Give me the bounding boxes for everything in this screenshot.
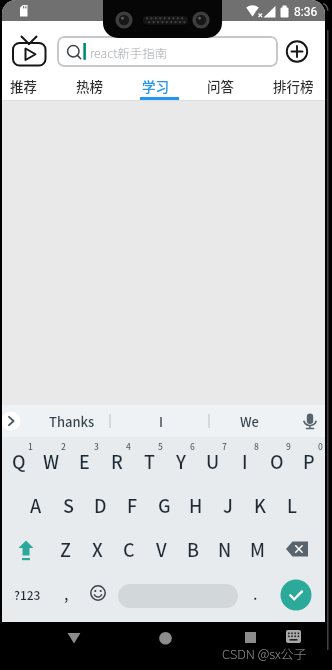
staticText: F — [127, 492, 138, 518]
button[interactable]: G — [148, 483, 180, 527]
staticText: 热榜 — [76, 76, 103, 96]
button[interactable]: 问答 — [207, 76, 234, 96]
button[interactable]: N — [209, 527, 241, 571]
staticText: J — [223, 492, 233, 518]
button[interactable]: S — [52, 483, 84, 527]
button[interactable]: , — [52, 571, 80, 617]
staticText: V — [156, 536, 167, 562]
button[interactable]: ?123 — [2, 571, 52, 617]
staticText: D — [94, 492, 107, 518]
button[interactable]: X — [81, 527, 113, 571]
staticText: CSDN @sx公子 — [222, 644, 307, 663]
button[interactable]: T — [133, 439, 165, 483]
staticText: M — [250, 536, 265, 562]
staticText: 4 — [126, 440, 131, 452]
staticText: H — [189, 492, 203, 518]
staticText: W — [43, 448, 60, 474]
staticText: , — [64, 583, 69, 605]
button[interactable]: V — [145, 527, 177, 571]
staticText: 学习 — [142, 76, 169, 96]
staticText: N — [218, 536, 232, 562]
staticText: Y — [176, 448, 186, 474]
staticText: . — [253, 583, 258, 605]
staticText: 8:36 — [294, 5, 318, 19]
staticText: ?123 — [14, 586, 41, 603]
button[interactable]: K — [244, 483, 276, 527]
button[interactable]: J — [212, 483, 244, 527]
staticText: 1 — [28, 440, 33, 452]
button[interactable] — [10, 33, 52, 69]
button[interactable]: 学习 — [142, 76, 169, 96]
staticText: react新手指南 — [90, 43, 168, 61]
button[interactable]: 推荐 — [10, 76, 37, 96]
button[interactable]: We — [210, 405, 288, 437]
staticText: 排行榜 — [273, 76, 314, 96]
button[interactable]: P — [293, 439, 325, 483]
staticText: I — [159, 412, 164, 431]
staticText: I — [242, 448, 248, 474]
staticText: O — [270, 448, 284, 474]
staticText: X — [92, 536, 103, 562]
staticText: 6 — [190, 440, 195, 452]
staticText: We — [240, 412, 259, 431]
staticText: 8 — [254, 440, 259, 452]
button[interactable]: W — [35, 439, 68, 483]
staticText: K — [254, 492, 266, 518]
staticText: 9 — [286, 440, 291, 452]
button[interactable] — [150, 622, 182, 654]
staticText: 问答 — [207, 76, 234, 96]
button[interactable]: C — [113, 527, 145, 571]
button[interactable]: F — [116, 483, 148, 527]
button[interactable]: 热榜 — [76, 76, 103, 96]
button[interactable] — [283, 39, 311, 67]
button[interactable]: R — [101, 439, 133, 483]
staticText: L — [287, 492, 298, 518]
button[interactable]: L — [276, 483, 308, 527]
button[interactable]: E — [68, 439, 101, 483]
button[interactable]: react新手指南 — [57, 36, 278, 67]
button[interactable]: Q — [2, 439, 35, 483]
staticText: Thanks — [49, 412, 95, 431]
button[interactable] — [116, 571, 240, 617]
button[interactable] — [80, 571, 116, 617]
staticText: Z — [60, 536, 71, 562]
button[interactable]: U — [197, 439, 229, 483]
button[interactable]: I — [122, 405, 200, 437]
button[interactable]: 排行榜 — [273, 76, 314, 96]
staticText: E — [79, 448, 90, 474]
staticText: 2 — [61, 440, 66, 452]
button[interactable] — [238, 622, 270, 654]
staticText: B — [187, 536, 200, 562]
staticText: C — [123, 536, 135, 562]
staticText: T — [144, 448, 155, 474]
button[interactable] — [273, 527, 325, 571]
staticText: U — [206, 448, 220, 474]
button[interactable]: M — [241, 527, 273, 571]
staticText: S — [63, 492, 74, 518]
staticText: A — [30, 492, 42, 518]
button[interactable]: B — [177, 527, 209, 571]
staticText: Q — [12, 448, 26, 474]
staticText: 3 — [94, 440, 99, 452]
button[interactable]: O — [261, 439, 293, 483]
button[interactable]: I — [229, 439, 261, 483]
button[interactable]: Thanks — [22, 405, 122, 437]
button[interactable]: Y — [165, 439, 197, 483]
button[interactable]: D — [84, 483, 116, 527]
staticText: G — [158, 492, 171, 518]
staticText: 5 — [158, 440, 163, 452]
button[interactable] — [2, 527, 50, 571]
staticText: R — [111, 448, 123, 474]
button[interactable]: H — [180, 483, 212, 527]
staticText: 7 — [222, 440, 227, 452]
staticText: 0 — [318, 440, 323, 452]
staticText: P — [303, 448, 315, 474]
button[interactable]: . — [240, 571, 270, 617]
button[interactable] — [58, 622, 90, 654]
staticText: 推荐 — [10, 76, 37, 96]
button[interactable]: A — [20, 483, 52, 527]
button[interactable]: Z — [50, 527, 81, 571]
button[interactable] — [270, 571, 325, 617]
